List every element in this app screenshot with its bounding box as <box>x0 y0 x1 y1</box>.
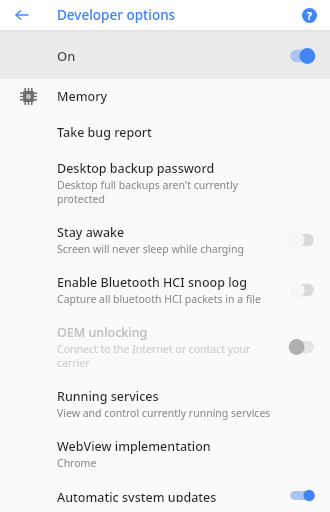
staticText: Screen will never sleep while charging <box>57 242 244 256</box>
staticText: ? <box>307 9 312 23</box>
button[interactable]: On <box>0 32 330 79</box>
staticText: View and control currently running servi… <box>57 406 271 420</box>
staticText: On <box>57 47 76 65</box>
staticText: Running services <box>57 388 159 405</box>
button[interactable]: OEM unlocking <box>0 315 330 379</box>
button[interactable]: Memory <box>0 79 330 114</box>
staticText: Capture all bluetooth HCI packets in a f… <box>57 292 261 306</box>
button[interactable]: Automatic system updates <box>0 479 330 512</box>
button[interactable]: Enable Bluetooth HCI snoop log <box>0 265 330 315</box>
staticText: OEM unlocking <box>57 324 148 341</box>
staticText: Take bug report <box>57 124 152 141</box>
button[interactable]: WebView implementation <box>0 429 330 479</box>
staticText: Stay awake <box>57 224 125 241</box>
button[interactable]: Running services <box>0 379 330 429</box>
button[interactable]: Back <box>9 2 35 28</box>
staticText: Desktop full backups aren't currently pr… <box>57 178 280 206</box>
staticText: WebView implementation <box>57 438 211 455</box>
button[interactable]: Stay awake <box>0 215 330 265</box>
button[interactable]: Take bug report <box>0 114 330 151</box>
button[interactable]: Desktop backup password <box>0 151 330 215</box>
staticText: Desktop backup password <box>57 160 215 177</box>
staticText: Enable Bluetooth HCI snoop log <box>57 274 247 291</box>
button[interactable]: Help <box>297 3 321 27</box>
staticText: Developer options <box>57 6 176 24</box>
staticText: Memory <box>57 88 108 105</box>
staticText: Chrome <box>57 456 97 470</box>
staticText: Connect to the Internet or contact your … <box>57 342 280 370</box>
staticText: Automatic system updates <box>57 489 217 502</box>
